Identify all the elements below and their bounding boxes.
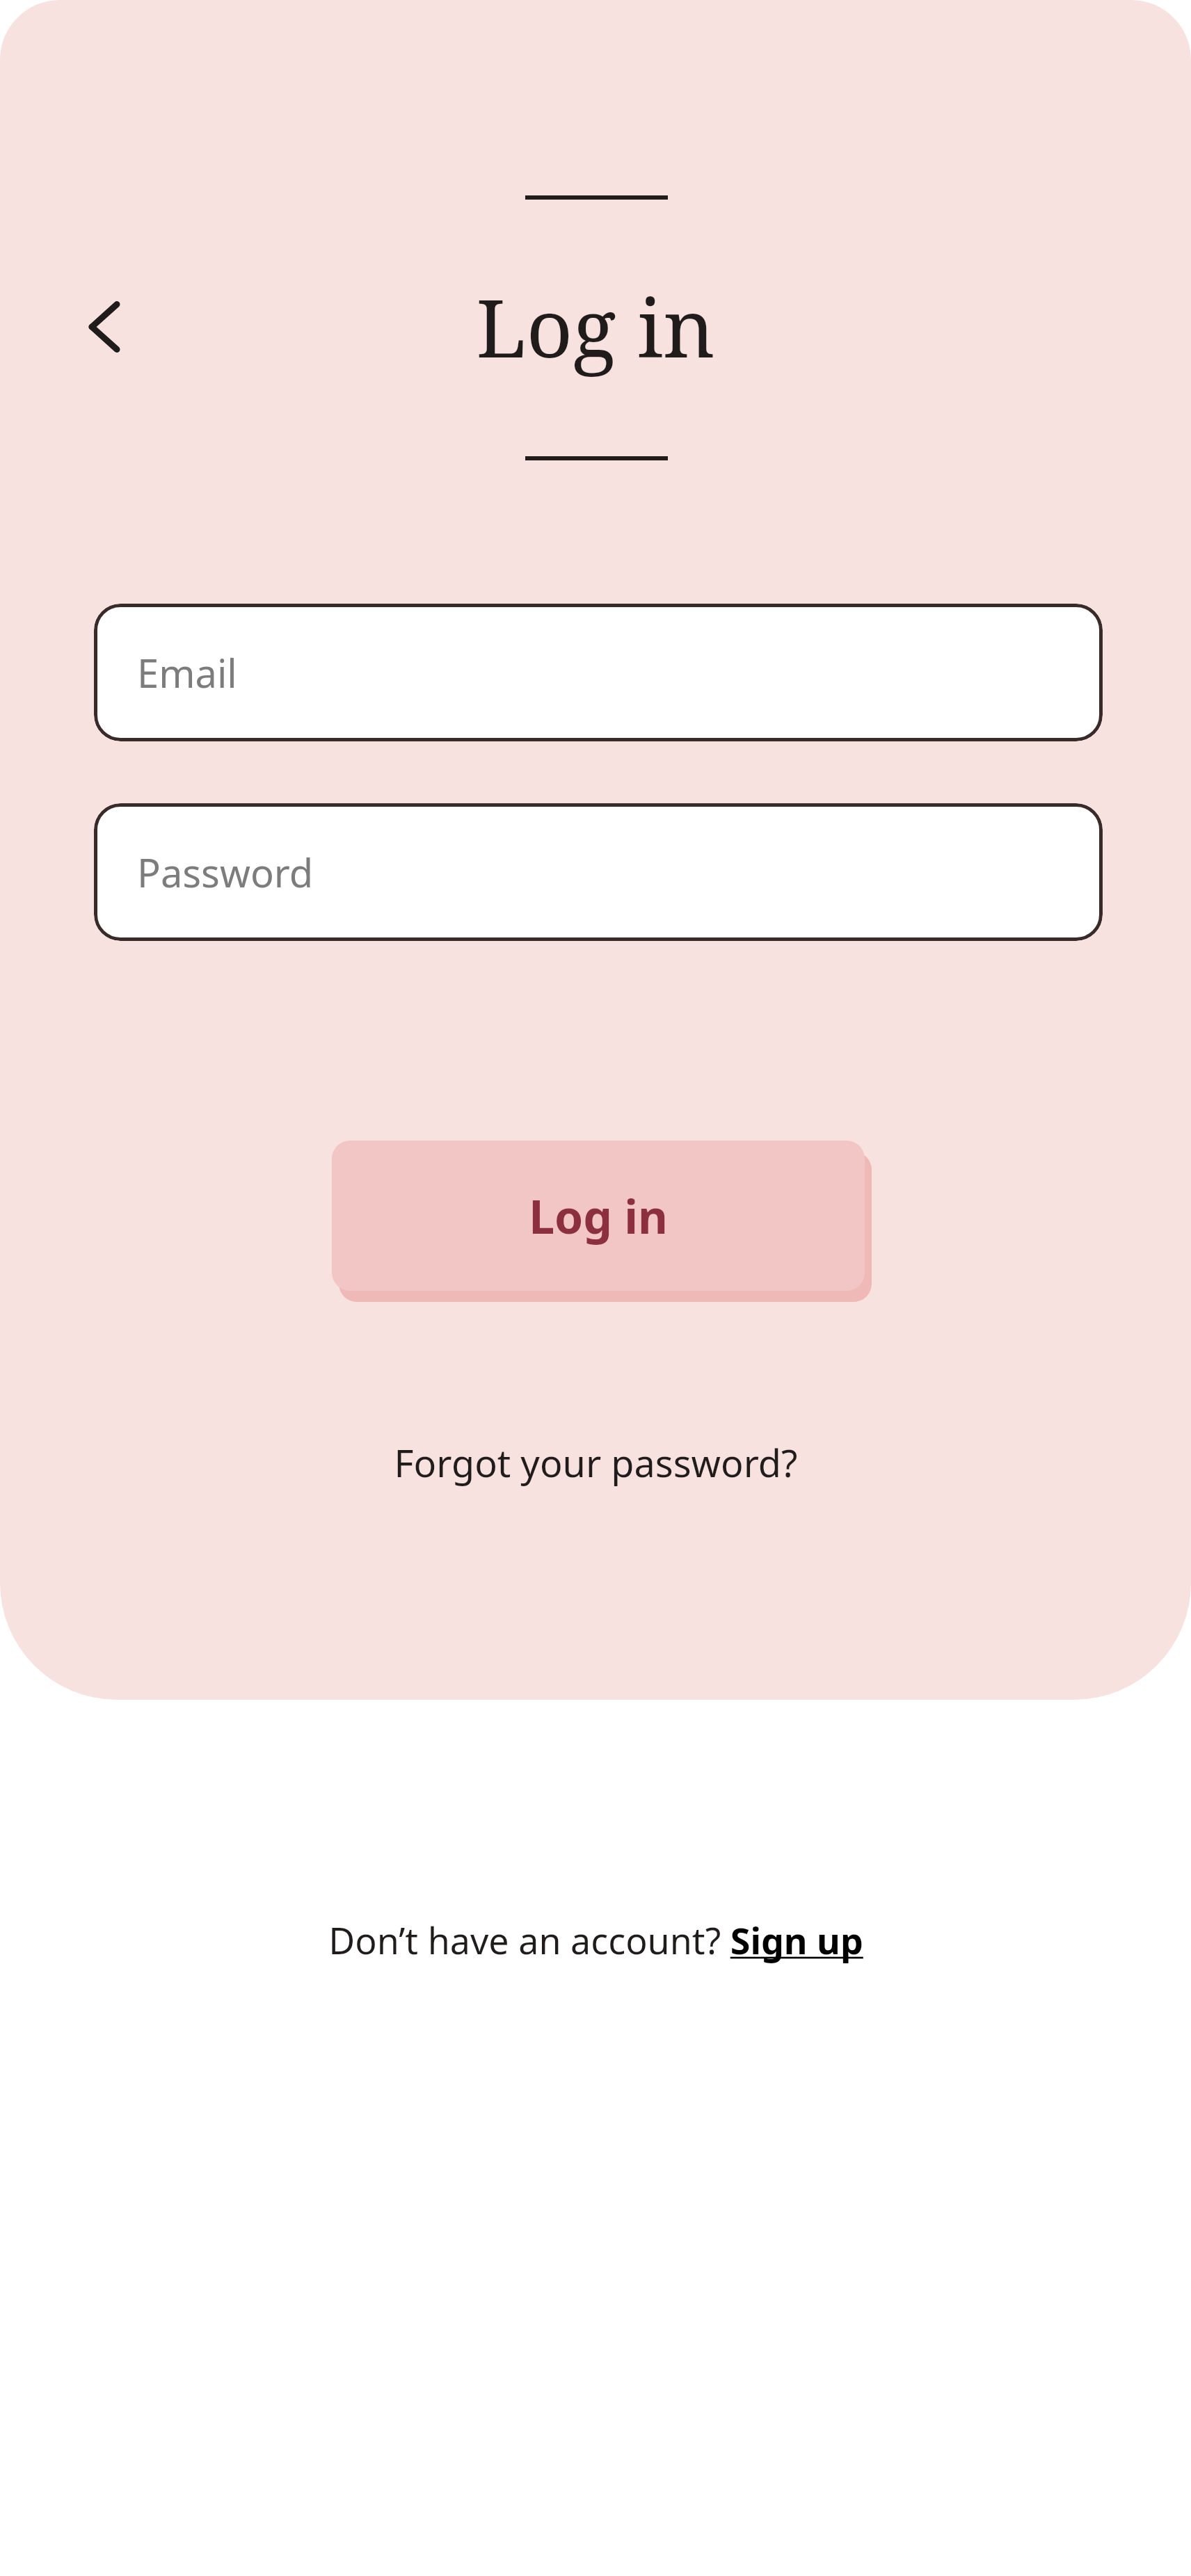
button[interactable]: Log in xyxy=(332,1141,865,1291)
button[interactable]: Email xyxy=(94,604,1103,741)
button[interactable]: Forgot your password? xyxy=(380,1427,812,1498)
staticText: Password xyxy=(137,846,314,899)
button[interactable]: Don’t have an account? Sign up xyxy=(316,1907,876,1973)
staticText: Log in xyxy=(529,1184,668,1247)
button[interactable]: Password xyxy=(94,803,1103,941)
staticText: Email xyxy=(137,646,237,699)
staticText: Log in xyxy=(476,271,715,381)
staticText: Don’t have an account? Sign up xyxy=(328,1915,863,1965)
button[interactable]: Back xyxy=(56,278,153,376)
staticText: Forgot your password? xyxy=(394,1437,798,1488)
